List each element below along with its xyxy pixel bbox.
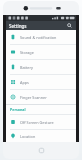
button[interactable]: Battery bbox=[6, 60, 76, 74]
staticText: Location bbox=[20, 134, 36, 139]
button[interactable]: Location bbox=[6, 130, 76, 142]
staticText: Off Screen Gesture bbox=[20, 120, 54, 125]
staticText: Battery bbox=[20, 65, 33, 70]
button[interactable]: Sound & notification bbox=[6, 30, 76, 44]
button[interactable]: Storage bbox=[6, 45, 76, 59]
staticText: Settings bbox=[9, 23, 27, 29]
button[interactable]: Home bbox=[38, 147, 45, 154]
staticText: Personal bbox=[10, 107, 26, 112]
button[interactable]: Search bbox=[66, 22, 73, 29]
button[interactable]: Finger Scanner bbox=[6, 90, 76, 104]
staticText: Sound & notification bbox=[20, 35, 57, 40]
button[interactable]: Off Screen Gesture bbox=[6, 115, 76, 129]
staticText: Apps bbox=[20, 80, 29, 85]
staticText: Storage bbox=[20, 50, 34, 55]
button[interactable]: Apps bbox=[6, 75, 76, 89]
staticText: Finger Scanner bbox=[20, 95, 47, 100]
